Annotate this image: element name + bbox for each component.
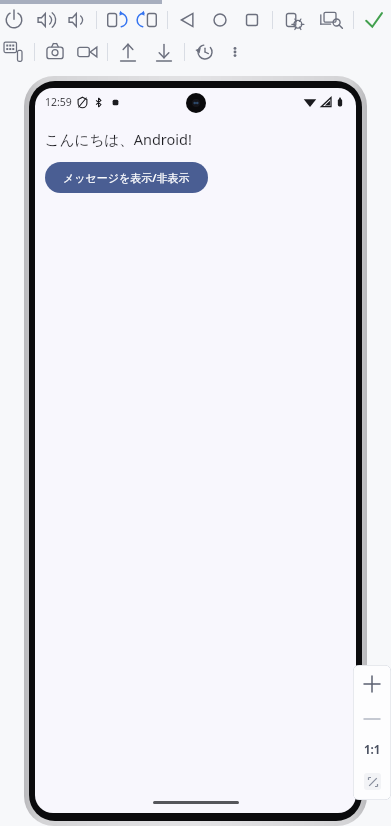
button[interactable]: Actual size — [353, 735, 391, 765]
button[interactable]: Layout inspector — [320, 7, 346, 33]
button[interactable]: Volume up — [33, 7, 59, 33]
staticText: こんにちは、Android! — [45, 129, 192, 149]
button[interactable]: Fit to window — [353, 765, 391, 797]
button[interactable]: Download file — [151, 39, 177, 65]
button[interactable]: Virtual keyboard — [1, 39, 27, 65]
button[interactable]: Confirm — [361, 7, 387, 33]
button[interactable]: More options — [226, 39, 244, 65]
staticText: 1:1 — [364, 742, 381, 758]
button[interactable]: History — [192, 39, 218, 65]
button[interactable]: メッセージを表示/非表示 — [45, 162, 208, 193]
button[interactable]: Take screenshot — [42, 39, 68, 65]
button[interactable]: Overview — [239, 7, 265, 33]
button[interactable]: Zoom in — [353, 665, 391, 703]
button[interactable]: Device settings — [280, 7, 306, 33]
button[interactable]: Upload file — [115, 39, 141, 65]
button[interactable]: Back — [175, 7, 201, 33]
button[interactable]: Volume down — [63, 7, 89, 33]
button[interactable]: Power — [1, 7, 27, 33]
staticText: メッセージを表示/非表示 — [63, 170, 190, 185]
button[interactable]: Home — [207, 7, 233, 33]
staticText: 12:59 — [45, 95, 72, 109]
button[interactable]: Record screen — [74, 39, 100, 65]
button[interactable]: Zoom out — [353, 703, 391, 735]
button[interactable]: Rotate left — [104, 7, 130, 33]
button[interactable]: Rotate right — [134, 7, 160, 33]
